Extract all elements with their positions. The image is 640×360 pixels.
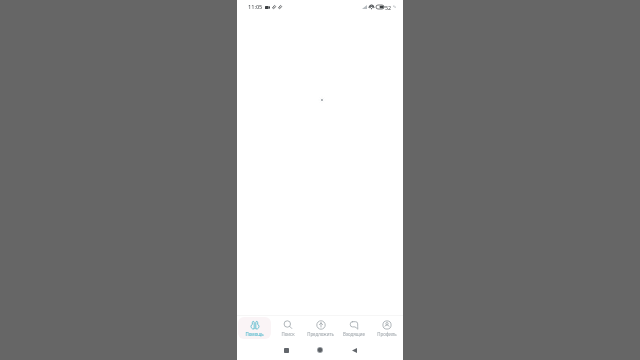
button[interactable]: Home [313,343,327,357]
staticText: Поиск [281,331,295,337]
staticText: Профиль [377,331,397,337]
button[interactable]: Back [347,343,361,357]
button[interactable]: Предложить [304,317,337,339]
button[interactable]: Профиль [370,317,403,339]
button[interactable]: Помощь [238,317,271,339]
button[interactable]: Поиск [271,317,304,339]
staticText: 11:05 [248,3,263,11]
staticText: Предложить [307,331,334,337]
button[interactable]: Входящие [337,317,370,339]
staticText: 52 [385,4,392,11]
staticText: Входящие [343,331,365,337]
staticText: Помощь [245,331,264,337]
button[interactable]: Recents [279,343,293,357]
